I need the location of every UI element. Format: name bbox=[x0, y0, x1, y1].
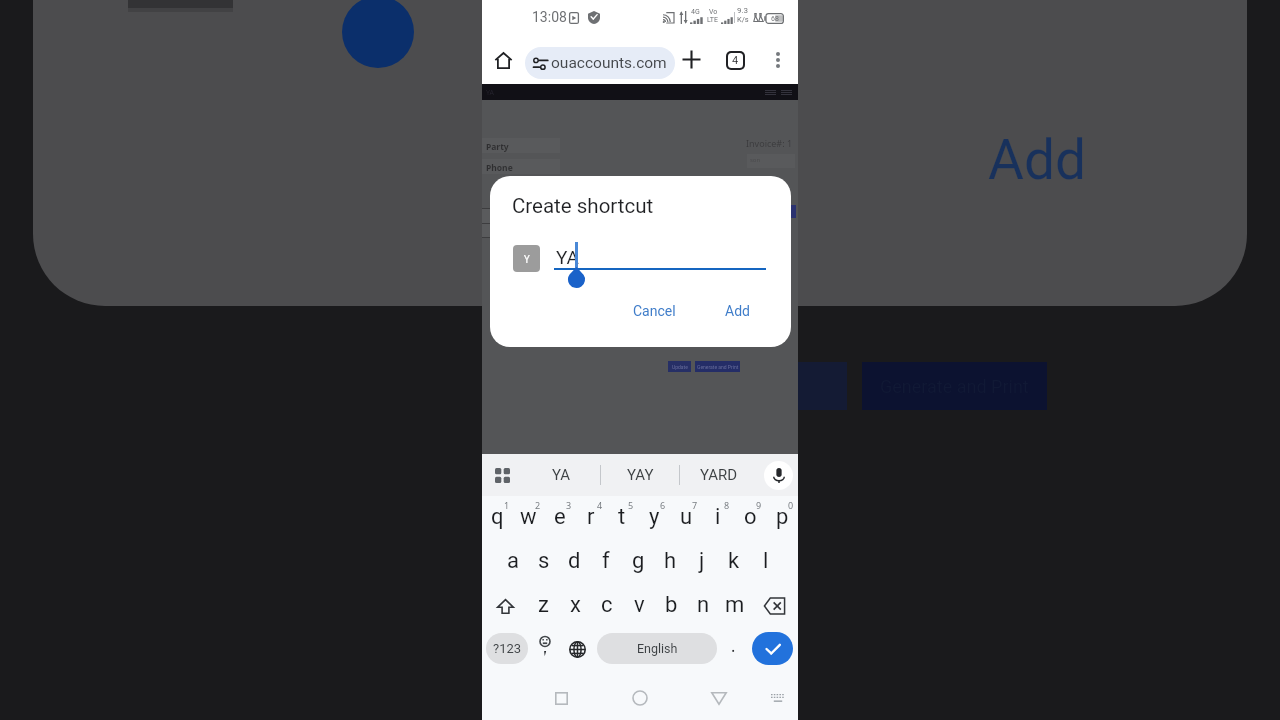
staticText: a bbox=[507, 548, 519, 574]
button[interactable]: Tabs bbox=[719, 44, 751, 76]
button[interactable]: Backspace bbox=[751, 584, 798, 628]
staticText: e bbox=[554, 504, 566, 530]
button[interactable]: Cancel bbox=[625, 296, 684, 326]
button[interactable]: 3 bbox=[544, 496, 575, 540]
button[interactable]: New tab bbox=[675, 43, 707, 75]
button[interactable]: z bbox=[528, 584, 559, 628]
staticText: r bbox=[587, 504, 595, 530]
staticText: y bbox=[649, 504, 660, 530]
staticText: English bbox=[637, 641, 678, 656]
staticText: Update bbox=[672, 364, 688, 370]
button[interactable]: 0 bbox=[766, 496, 798, 540]
button[interactable]: j bbox=[686, 540, 718, 584]
button[interactable]: ?123 bbox=[486, 633, 528, 664]
staticText: q bbox=[491, 504, 504, 530]
button[interactable]: Change language bbox=[566, 632, 588, 666]
staticText: j bbox=[699, 548, 705, 574]
staticText: b bbox=[665, 592, 678, 618]
button[interactable]: ouaccounts.com bbox=[525, 47, 675, 79]
staticText: Invoice#: 1 bbox=[746, 137, 793, 149]
button[interactable]: b bbox=[655, 584, 687, 628]
staticText: YA bbox=[552, 466, 571, 484]
staticText: YA bbox=[556, 246, 579, 268]
staticText: c bbox=[601, 592, 613, 618]
staticText: f bbox=[602, 548, 610, 574]
button[interactable]: h bbox=[654, 540, 686, 584]
button[interactable]: Home bbox=[623, 681, 657, 715]
button[interactable]: c bbox=[591, 584, 623, 628]
button[interactable]: f bbox=[590, 540, 622, 584]
button[interactable]: 2 bbox=[513, 496, 544, 540]
staticText: 0 bbox=[788, 499, 794, 511]
button[interactable]: m bbox=[719, 584, 751, 628]
staticText: Phone bbox=[486, 162, 513, 174]
button[interactable]: d bbox=[559, 540, 590, 584]
staticText: i bbox=[715, 504, 721, 530]
staticText: z bbox=[538, 592, 549, 618]
staticText: k bbox=[728, 548, 740, 574]
staticText: 4 bbox=[732, 54, 739, 67]
staticText: 9 bbox=[756, 499, 762, 511]
staticText: Create shortcut bbox=[512, 194, 654, 218]
staticText: ouaccounts.com bbox=[551, 54, 667, 72]
staticText: d bbox=[568, 548, 581, 574]
staticText: Y bbox=[524, 252, 530, 266]
staticText: 13:08 bbox=[532, 9, 567, 25]
staticText: u bbox=[680, 504, 693, 530]
button[interactable]: Voice input bbox=[758, 454, 798, 496]
button[interactable]: Recents bbox=[544, 681, 578, 715]
button[interactable]: Back bbox=[702, 681, 736, 715]
button[interactable]: YARD bbox=[680, 454, 758, 496]
button[interactable]: Shift bbox=[482, 584, 528, 628]
button[interactable]: 7 bbox=[670, 496, 702, 540]
button[interactable]: v bbox=[623, 584, 655, 628]
staticText: 4G bbox=[691, 8, 700, 16]
button[interactable]: . bbox=[723, 632, 743, 666]
button[interactable]: 1 bbox=[482, 496, 513, 540]
staticText: K/s bbox=[737, 15, 749, 24]
staticText: 3 bbox=[566, 499, 572, 511]
button[interactable]: Add bbox=[717, 296, 758, 326]
button[interactable]: 5 bbox=[606, 496, 638, 540]
button[interactable]: 6 bbox=[638, 496, 670, 540]
staticText: Add bbox=[988, 128, 1086, 192]
button[interactable]: g bbox=[622, 540, 654, 584]
staticText: o bbox=[744, 504, 757, 530]
button[interactable]: 8 bbox=[702, 496, 734, 540]
button[interactable]: Home bbox=[487, 44, 519, 76]
button[interactable]: l bbox=[750, 540, 782, 584]
button[interactable]: 4 bbox=[575, 496, 606, 540]
button[interactable]: Enter bbox=[752, 632, 793, 665]
staticText: t bbox=[618, 504, 626, 530]
staticText: 5 bbox=[628, 499, 634, 511]
staticText: l bbox=[763, 548, 769, 574]
button[interactable]: Emoji bbox=[534, 632, 556, 666]
staticText: 1 bbox=[504, 499, 510, 511]
staticText: ?123 bbox=[493, 641, 522, 656]
button[interactable]: Keyboard menu bbox=[482, 454, 522, 496]
staticText: 7 bbox=[692, 499, 698, 511]
staticText: YARD bbox=[700, 466, 738, 484]
button[interactable]: YA bbox=[522, 454, 600, 496]
button[interactable]: Hide keyboard bbox=[763, 683, 793, 713]
staticText: son bbox=[750, 156, 761, 164]
button[interactable]: YAY bbox=[601, 454, 679, 496]
button[interactable]: s bbox=[528, 540, 559, 584]
button[interactable]: x bbox=[559, 584, 591, 628]
button[interactable]: k bbox=[718, 540, 750, 584]
staticText: Generate and Print bbox=[697, 364, 739, 370]
button[interactable]: n bbox=[687, 584, 719, 628]
staticText: w bbox=[520, 504, 537, 530]
staticText: 8 bbox=[724, 499, 730, 511]
staticText: p bbox=[776, 504, 789, 530]
staticText: LTE bbox=[707, 16, 718, 24]
staticText: 4 bbox=[597, 499, 603, 511]
button[interactable]: a bbox=[497, 540, 528, 584]
staticText: s bbox=[538, 548, 550, 574]
button[interactable]: 9 bbox=[734, 496, 766, 540]
button[interactable]: English bbox=[597, 633, 717, 664]
button[interactable]: More options bbox=[762, 44, 794, 76]
staticText: m bbox=[725, 592, 745, 618]
staticText: v bbox=[634, 592, 645, 618]
staticText: h bbox=[664, 548, 677, 574]
